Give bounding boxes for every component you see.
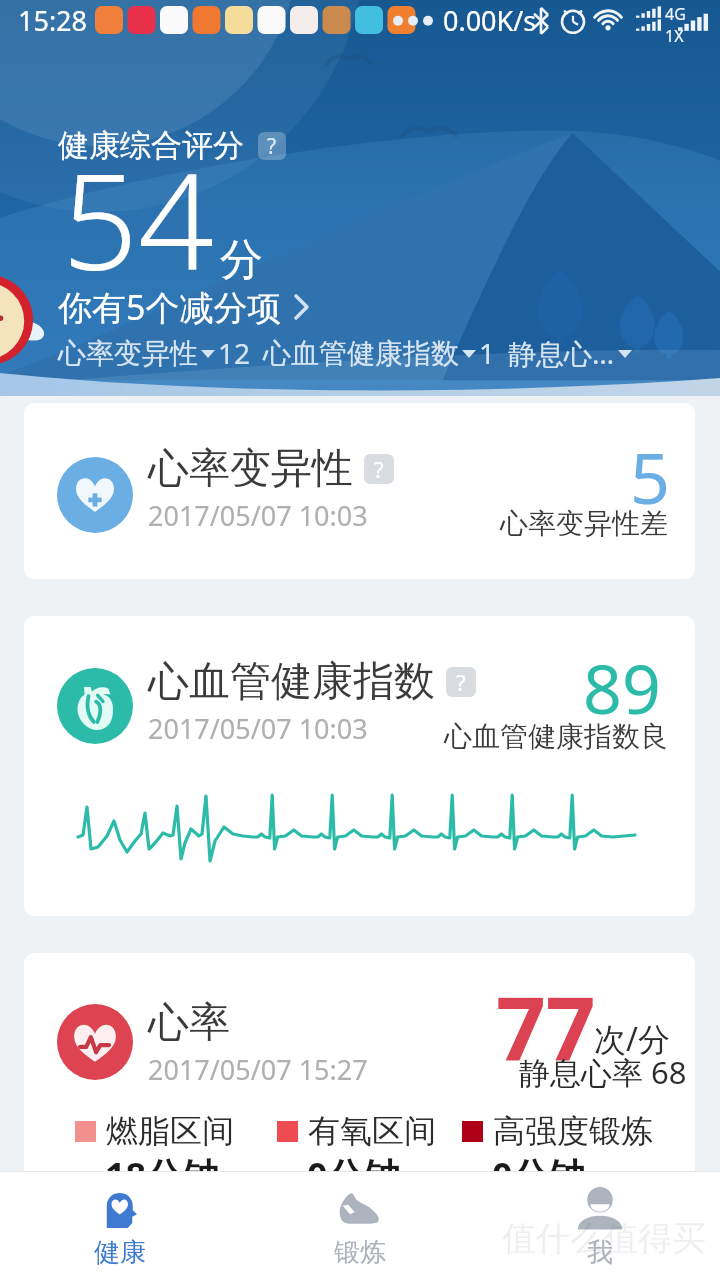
staticText: 2017/05/07 10:03 bbox=[148, 710, 368, 747]
staticText: 0分钟 bbox=[492, 1151, 585, 1183]
button[interactable]: 你有5个减分项 bbox=[58, 284, 314, 330]
staticText: 锻炼 bbox=[334, 1236, 386, 1269]
button[interactable]: 燃脂区间 bbox=[75, 1111, 234, 1183]
staticText: 心血管健康指数 bbox=[263, 336, 459, 371]
staticText: 77 bbox=[496, 968, 596, 1086]
staticText: 次/分 bbox=[594, 1017, 670, 1061]
button[interactable]: 心血管健康指数 bbox=[24, 616, 695, 916]
staticText: 89 bbox=[583, 641, 661, 734]
button[interactable]: 心率 bbox=[24, 953, 695, 1183]
staticText: ? bbox=[456, 667, 466, 697]
button[interactable]: 有氧区间 bbox=[277, 1111, 436, 1183]
button[interactable]: 我 bbox=[480, 1172, 720, 1280]
staticText: 心率 bbox=[148, 997, 230, 1049]
staticText: 你有5个减分项 bbox=[58, 284, 282, 330]
staticText: 我 bbox=[587, 1236, 613, 1269]
button[interactable]: 心率变异性 bbox=[24, 403, 695, 579]
staticText: 心率变异性 bbox=[148, 443, 353, 495]
staticText: 心血管健康指数良 bbox=[444, 719, 668, 754]
staticText: ? bbox=[267, 132, 277, 160]
button[interactable]: 说明 bbox=[446, 667, 476, 697]
button[interactable]: 心率变异性 bbox=[58, 334, 251, 372]
staticText: 0.00K/s bbox=[443, 2, 537, 39]
staticText: ? bbox=[374, 454, 384, 484]
staticText: 健康 bbox=[94, 1236, 146, 1269]
staticText: 2017/05/07 10:03 bbox=[148, 497, 368, 534]
button[interactable]: 说明 bbox=[364, 454, 394, 484]
button[interactable]: 评分说明 bbox=[258, 132, 286, 160]
staticText: 分 bbox=[220, 233, 263, 287]
button[interactable]: 健康 bbox=[0, 1172, 240, 1280]
staticText: 0分钟 bbox=[307, 1151, 400, 1183]
staticText: 4G bbox=[665, 3, 686, 25]
staticText: 燃脂区间 bbox=[106, 1111, 234, 1151]
staticText: 有氧区间 bbox=[308, 1111, 436, 1151]
staticText: 静息心… bbox=[508, 334, 615, 372]
staticText: 18分钟 bbox=[105, 1151, 219, 1183]
staticText: 心率变异性差 bbox=[500, 506, 668, 541]
staticText: 12 bbox=[218, 334, 251, 372]
staticText: 心率变异性 bbox=[58, 336, 198, 371]
staticText: 1X bbox=[665, 25, 684, 43]
button[interactable]: 高强度锻炼 bbox=[462, 1111, 653, 1183]
staticText: 54 bbox=[62, 128, 214, 309]
staticText: 2017/05/07 15:27 bbox=[148, 1051, 368, 1088]
button[interactable]: 锻炼 bbox=[240, 1172, 480, 1280]
staticText: 15:28 bbox=[18, 2, 88, 39]
staticText: 高强度锻炼 bbox=[493, 1111, 653, 1151]
staticText: 健康综合评分 bbox=[58, 126, 244, 165]
staticText: 1 bbox=[479, 334, 496, 372]
staticText: 静息心率 68 bbox=[519, 1051, 687, 1093]
staticText: 5 bbox=[630, 429, 671, 524]
button[interactable]: 心血管健康指数 bbox=[263, 334, 496, 372]
staticText: 心血管健康指数 bbox=[148, 656, 435, 708]
staticText: 值什么值得买 bbox=[502, 1217, 706, 1260]
button[interactable]: 静息心… bbox=[508, 334, 635, 372]
